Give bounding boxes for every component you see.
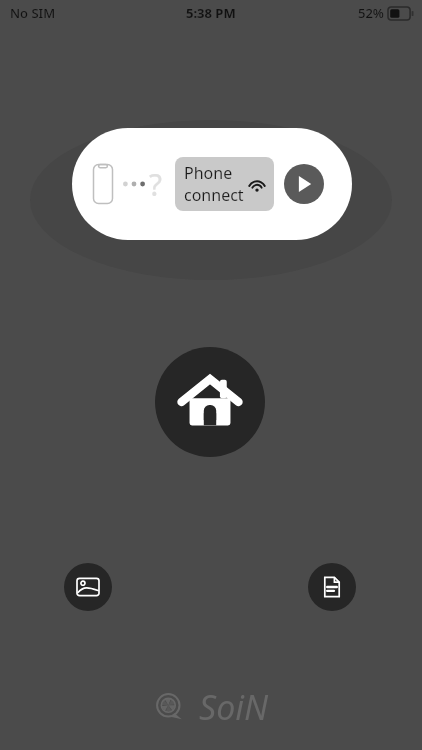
button[interactable]: ? <box>72 128 352 240</box>
staticText: connect <box>184 184 244 206</box>
button[interactable]: Documents <box>308 563 356 611</box>
staticText: ? <box>149 164 163 205</box>
staticText: Phone <box>184 162 233 184</box>
staticText: 5:38 PM <box>186 4 236 22</box>
button[interactable]: Gallery <box>64 563 112 611</box>
staticText: SoiN <box>199 684 269 730</box>
staticText: 52% <box>358 4 384 22</box>
button[interactable]: Phone <box>175 157 274 211</box>
button[interactable]: Play <box>284 164 324 204</box>
staticText: No SIM <box>10 4 56 22</box>
button[interactable]: Home <box>155 347 265 457</box>
